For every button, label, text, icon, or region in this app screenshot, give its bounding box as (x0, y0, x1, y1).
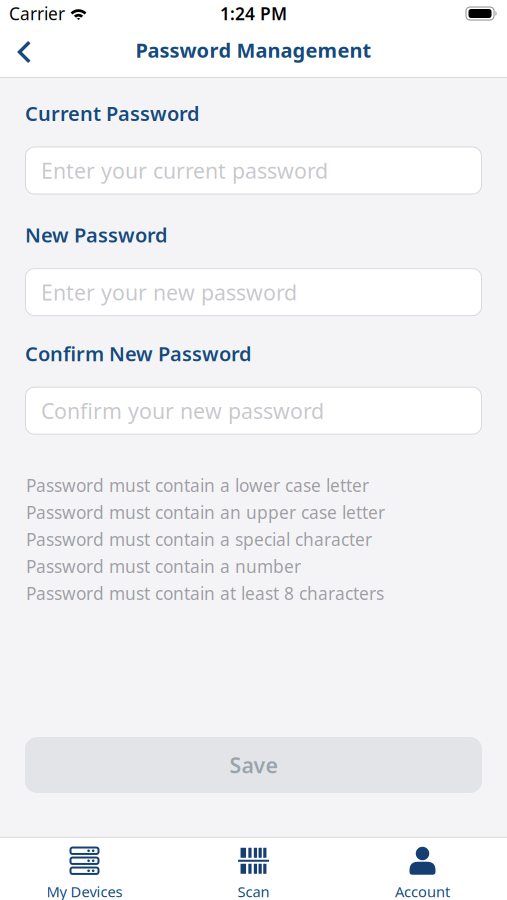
button[interactable]: Enter your current password (25, 147, 482, 195)
staticText: Enter your current password (41, 156, 328, 185)
staticText: Account (395, 882, 450, 900)
staticText: Save (229, 751, 277, 779)
button[interactable]: Account (338, 838, 507, 900)
staticText: Password must contain a special characte… (26, 528, 372, 551)
staticText: Enter your new password (41, 278, 297, 306)
staticText: Confirm your new password (41, 396, 324, 425)
button[interactable]: Scan (169, 838, 338, 900)
staticText: New Password (25, 222, 168, 248)
staticText: Password Management (135, 37, 371, 63)
staticText: Carrier (9, 2, 65, 25)
staticText: Current Password (25, 100, 200, 127)
staticText: 1:24 PM (220, 2, 287, 25)
staticText: Password must contain an upper case lett… (26, 501, 385, 524)
button[interactable]: Save (25, 737, 482, 793)
staticText: Password must contain at least 8 charact… (26, 582, 384, 605)
button[interactable]: Confirm your new password (25, 387, 482, 435)
staticText: Password must contain a number (26, 555, 301, 578)
button[interactable]: My Devices (0, 838, 169, 900)
button[interactable]: Enter your new password (25, 268, 482, 316)
staticText: My Devices (46, 882, 122, 900)
staticText: Confirm New Password (25, 340, 252, 367)
staticText: Scan (237, 882, 269, 900)
button[interactable]: Back (0, 28, 43, 75)
staticText: Password must contain a lower case lette… (26, 474, 369, 497)
